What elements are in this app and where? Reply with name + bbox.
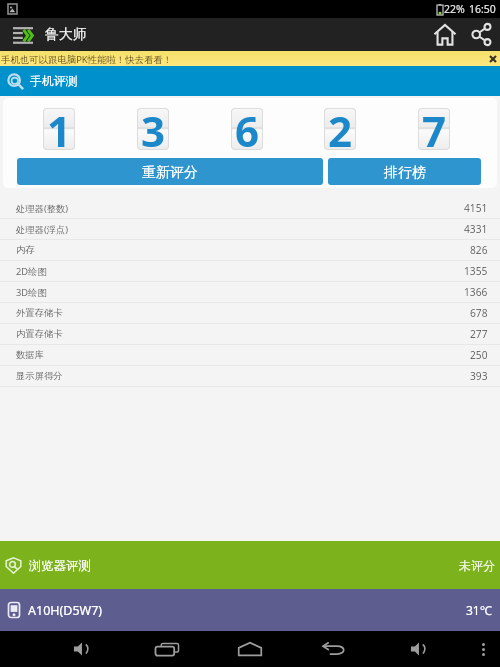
button[interactable]: 处理器(整数)	[0, 198, 500, 218]
staticText: 277	[470, 327, 488, 341]
staticText: 数据库	[16, 349, 44, 361]
button[interactable]: 内存	[0, 240, 500, 260]
staticText: 手机评测	[30, 74, 78, 89]
staticText: 1355	[464, 264, 488, 278]
button[interactable]: 显示屏得分	[0, 366, 500, 386]
button[interactable]: 3D绘图	[0, 282, 500, 302]
staticText: 重新评分	[142, 164, 198, 182]
staticText: 393	[470, 369, 488, 383]
button[interactable]: 处理器(浮点)	[0, 219, 500, 239]
button[interactable]: 数据库	[0, 345, 500, 365]
button[interactable]: Recent apps	[151, 633, 183, 665]
staticText: 31℃	[466, 602, 492, 618]
staticText: 1	[47, 102, 72, 159]
staticText: 2	[328, 102, 353, 159]
staticText: 排行榜	[384, 164, 426, 182]
staticText: 浏览器评测	[29, 558, 91, 573]
staticText: 678	[470, 306, 488, 320]
button[interactable]: 重新评分	[17, 158, 323, 185]
staticText: 未评分	[459, 558, 495, 573]
button[interactable]: 浏览器评测	[0, 541, 500, 589]
button[interactable]: Close banner	[485, 51, 500, 66]
button[interactable]: Home	[234, 633, 266, 665]
staticText: 4151	[464, 201, 488, 215]
staticText: 手机也可以跟电脑PK性能啦！快去看看！	[1, 53, 173, 66]
button[interactable]: Home	[427, 18, 462, 51]
button[interactable]: Menu	[0, 18, 45, 51]
staticText: 处理器(浮点)	[16, 223, 69, 236]
staticText: 处理器(整数)	[16, 202, 69, 215]
button[interactable]: More options	[469, 635, 497, 663]
staticText: 3	[141, 102, 166, 159]
staticText: 内存	[16, 244, 35, 256]
button[interactable]: 内置存储卡	[0, 324, 500, 344]
staticText: 250	[470, 348, 488, 362]
button[interactable]: 排行榜	[328, 158, 481, 185]
button[interactable]: Back	[318, 633, 350, 665]
staticText: 鲁大师	[45, 26, 87, 44]
staticText: 22%	[444, 2, 465, 16]
staticText: 3D绘图	[16, 286, 47, 299]
staticText: A10H(D5W7)	[28, 602, 103, 619]
button[interactable]: 外置存储卡	[0, 303, 500, 323]
staticText: 6	[235, 102, 260, 159]
button[interactable]: 手机评测	[0, 66, 500, 96]
button[interactable]: Volume down	[65, 633, 97, 665]
staticText: 7	[422, 102, 447, 159]
staticText: 外置存储卡	[16, 307, 63, 319]
staticText: 2D绘图	[16, 265, 47, 278]
button[interactable]: Volume up	[402, 633, 434, 665]
staticText: 4331	[464, 222, 488, 236]
staticText: 16:50	[469, 2, 496, 16]
button[interactable]: A10H(D5W7)	[0, 589, 500, 631]
button[interactable]: 2D绘图	[0, 261, 500, 281]
staticText: 1366	[464, 285, 488, 299]
button[interactable]: Share	[462, 18, 500, 51]
staticText: 826	[470, 243, 488, 257]
staticText: 内置存储卡	[16, 328, 63, 340]
staticText: 显示屏得分	[16, 370, 63, 382]
